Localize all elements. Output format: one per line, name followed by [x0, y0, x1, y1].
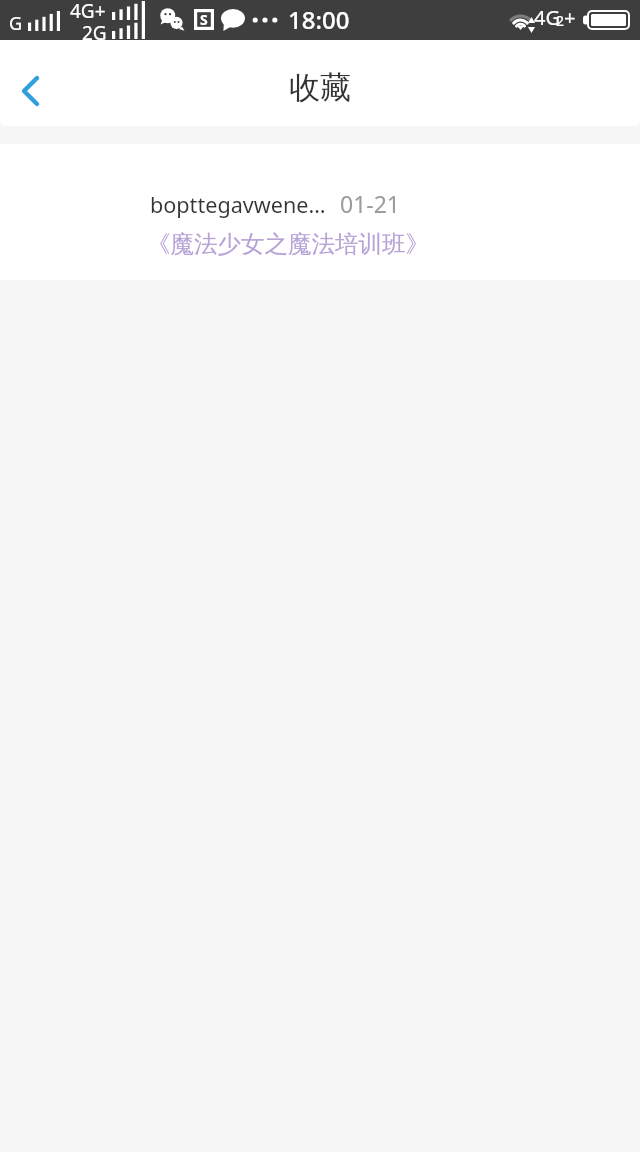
staticText: S [200, 10, 208, 29]
staticText: 2G [82, 20, 107, 46]
button[interactable]: Back [2, 63, 58, 119]
staticText: 4G+ [70, 0, 106, 24]
staticText: 《魔法少女之魔法培训班》 [147, 229, 640, 259]
staticText: G [9, 11, 23, 36]
staticText: 4G [534, 4, 560, 31]
staticText: 01-21 [340, 188, 401, 219]
staticText: 收藏 [289, 68, 351, 107]
staticText: bopttegavwene… [150, 190, 326, 219]
staticText: 18:00 [288, 3, 350, 36]
button[interactable]: bopttegavwene… [0, 144, 640, 280]
staticText: + [564, 4, 576, 31]
staticText: 2 [556, 11, 565, 30]
